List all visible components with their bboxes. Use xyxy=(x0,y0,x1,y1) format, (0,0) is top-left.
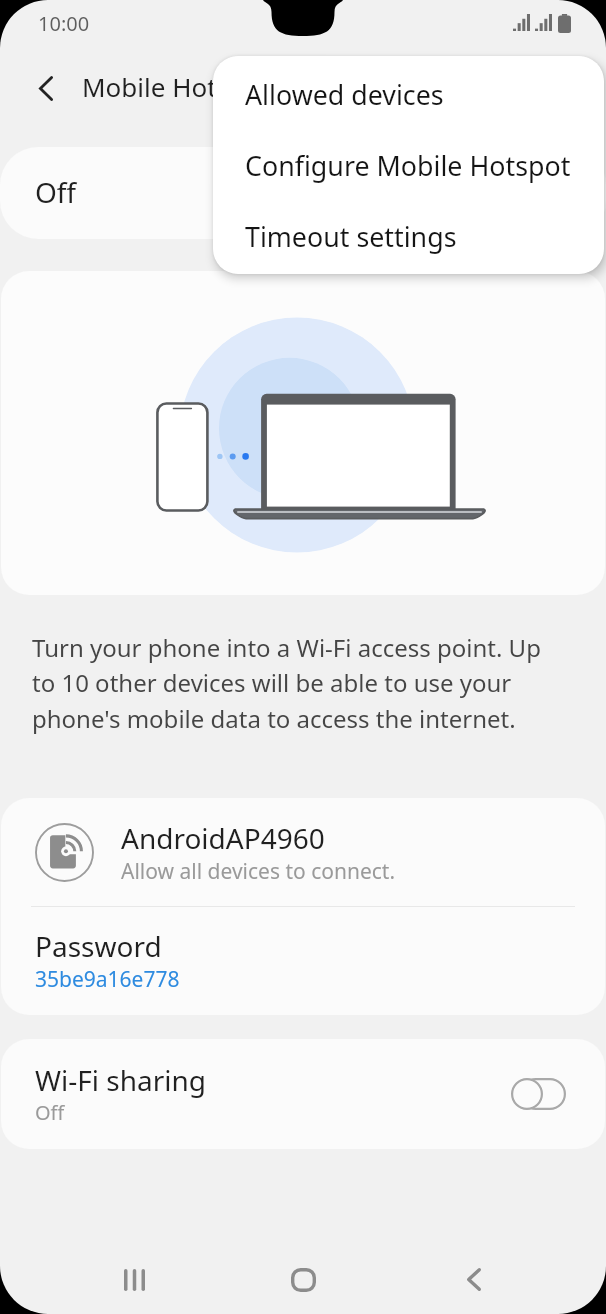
staticText: Allowed devices xyxy=(245,76,444,113)
button[interactable]: Wi-Fi sharing xyxy=(1,1039,605,1149)
staticText: Off xyxy=(35,1099,65,1126)
button[interactable]: AndroidAP4960 xyxy=(1,798,605,906)
button[interactable]: Timeout settings xyxy=(213,201,604,272)
button[interactable]: Back xyxy=(417,1245,530,1314)
staticText: Turn your phone into a Wi-Fi access poin… xyxy=(32,631,557,735)
staticText: AndroidAP4960 xyxy=(121,819,325,857)
button[interactable]: Recent apps xyxy=(78,1245,191,1314)
staticText: Configure Mobile Hotspot xyxy=(245,147,571,184)
button[interactable]: Configure Mobile Hotspot xyxy=(213,130,604,201)
staticText: Off xyxy=(35,173,77,211)
staticText: 35be9a16e778 xyxy=(35,965,180,994)
button[interactable]: Home xyxy=(247,1245,360,1314)
staticText: Mobile Hotspot xyxy=(82,69,271,104)
staticText: Allow all devices to connect. xyxy=(121,857,396,886)
staticText: Timeout settings xyxy=(245,218,457,255)
button[interactable]: Allowed devices xyxy=(213,59,604,130)
button[interactable]: Off xyxy=(0,147,606,239)
staticText: Password xyxy=(35,927,162,965)
staticText: Wi-Fi sharing xyxy=(35,1061,207,1099)
button[interactable]: Password xyxy=(1,907,605,994)
button[interactable]: Navigate up xyxy=(18,60,74,116)
staticText: 10:00 xyxy=(38,10,90,37)
